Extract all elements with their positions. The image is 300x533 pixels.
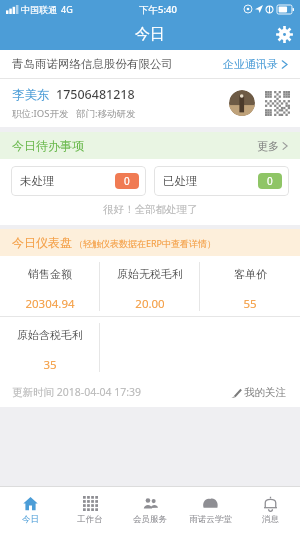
staticText: 我的关注: [244, 386, 286, 399]
staticText: 企业通讯录: [223, 57, 278, 71]
staticText: 消息: [262, 514, 279, 525]
button[interactable]: 原始无税毛利: [100, 256, 200, 316]
staticText: 20304.94: [25, 296, 75, 312]
staticText: 17506481218: [56, 86, 135, 103]
button[interactable]: QR code: [265, 91, 290, 116]
staticText: 4G: [61, 3, 73, 15]
staticText: 已处理: [163, 174, 198, 188]
staticText: 原始含税毛利: [17, 328, 83, 342]
button[interactable]: 消息: [240, 487, 300, 533]
button[interactable]: Avatar: [229, 90, 255, 116]
button[interactable]: 今日: [0, 487, 60, 533]
staticText: 会员服务: [133, 514, 167, 525]
button[interactable]: 销售金额: [0, 256, 100, 316]
button[interactable]: 原始含税毛利: [0, 317, 100, 377]
staticText: 职位:IOS开发: [12, 107, 69, 120]
staticText: 未处理: [20, 174, 55, 188]
staticText: 今日: [22, 514, 39, 525]
staticText: 青岛雨诺网络信息股份有限公司: [12, 57, 173, 71]
staticText: 雨诺云学堂: [189, 514, 232, 525]
staticText: 20.00: [135, 296, 165, 312]
staticText: 原始无税毛利: [117, 267, 183, 281]
staticText: 部门:移动研发: [76, 107, 136, 120]
staticText: 客单价: [234, 267, 267, 281]
staticText: 55: [243, 296, 257, 312]
staticText: 李美东: [12, 87, 50, 103]
button[interactable]: 工作台: [60, 487, 120, 533]
button[interactable]: 会员服务: [120, 487, 180, 533]
button[interactable]: Settings: [268, 18, 300, 50]
staticText: 35: [43, 357, 57, 373]
button[interactable]: 客单价: [200, 256, 300, 316]
staticText: （轻触仪表数据在ERP中查看详情）: [74, 237, 217, 249]
staticText: 中国联通: [21, 4, 57, 15]
staticText: 工作台: [77, 514, 103, 525]
staticText: 下午5:40: [139, 3, 177, 16]
staticText: 今日: [135, 25, 165, 44]
button[interactable]: 青岛雨诺网络信息股份有限公司: [0, 50, 300, 78]
button[interactable]: 未处理: [11, 166, 146, 196]
staticText: 销售金额: [28, 267, 72, 281]
staticText: 很好！全部都处理了: [103, 203, 198, 216]
button[interactable]: 更多: [257, 139, 288, 153]
staticText: 更新时间 2018-04-04 17:39: [12, 385, 142, 399]
staticText: 今日待办事项: [12, 138, 84, 153]
button[interactable]: 雨诺云学堂: [180, 487, 240, 533]
button[interactable]: 已处理: [154, 166, 289, 196]
staticText: 0: [124, 174, 130, 188]
staticText: 更多: [257, 139, 279, 153]
staticText: 0: [267, 174, 273, 188]
staticText: 今日仪表盘: [12, 235, 72, 250]
button[interactable]: 我的关注: [231, 386, 286, 399]
